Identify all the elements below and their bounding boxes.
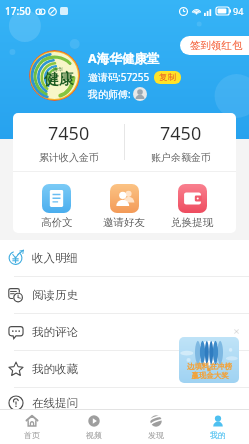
staticText: 健康 (44, 70, 74, 89)
staticText: 赢现金大奖 (191, 371, 229, 380)
button[interactable]: 邀请好友 (90, 172, 158, 233)
staticText: 高价文 (41, 216, 73, 229)
button[interactable]: 复制 (154, 71, 181, 84)
staticText: 我的 (210, 430, 226, 440)
staticText: 视频 (86, 430, 102, 440)
staticText: 邀请好友 (103, 216, 145, 229)
button[interactable]: 兑换提现 (158, 172, 226, 233)
button[interactable]: 活动广告 (179, 337, 239, 383)
staticText: A海华健康堂 (88, 50, 160, 67)
staticText: 签到领红包 (190, 39, 243, 52)
button[interactable]: 关闭 (231, 326, 242, 337)
button[interactable]: 视频 (63, 410, 125, 444)
staticText: 收入明细 (32, 251, 78, 265)
staticText: 海华 (53, 66, 63, 72)
button[interactable]: 发现 (125, 410, 187, 444)
staticText: 边填料在冲榜 (187, 362, 232, 371)
staticText: 首页 (24, 430, 40, 440)
button[interactable]: 签到领红包 (180, 36, 249, 55)
button[interactable]: 收入明细 (0, 240, 249, 276)
staticText: 发现 (148, 430, 164, 440)
staticText: 邀请码:57255 (88, 70, 150, 84)
staticText: 复制 (159, 72, 176, 83)
staticText: 我的评论 (32, 325, 78, 339)
button[interactable]: 高价文 (23, 172, 90, 233)
button[interactable]: 我的评论 (0, 314, 249, 350)
button[interactable]: 我的 (187, 410, 249, 444)
staticText: 账户余额金币 (151, 151, 211, 164)
button[interactable]: 7450 (13, 113, 124, 171)
staticText: 我的师傅: (88, 87, 131, 101)
staticText: 累计收入金币 (39, 151, 99, 164)
staticText: 我的收藏 (32, 362, 78, 376)
staticText: 在线提问 (32, 396, 78, 410)
button[interactable]: 在线提问 (0, 388, 249, 418)
staticText: 兑换提现 (171, 216, 213, 229)
button[interactable]: 首页 (0, 410, 63, 444)
staticText: 7450 (160, 121, 202, 146)
button[interactable]: 7450 (125, 113, 236, 171)
button[interactable]: 阅读历史 (0, 277, 249, 313)
staticText: 阅读历史 (32, 288, 78, 302)
staticText: 7450 (48, 121, 90, 146)
staticText: 17:50 (5, 4, 31, 18)
staticText: 94 (233, 5, 244, 17)
button[interactable]: 我的收藏 (0, 351, 249, 387)
